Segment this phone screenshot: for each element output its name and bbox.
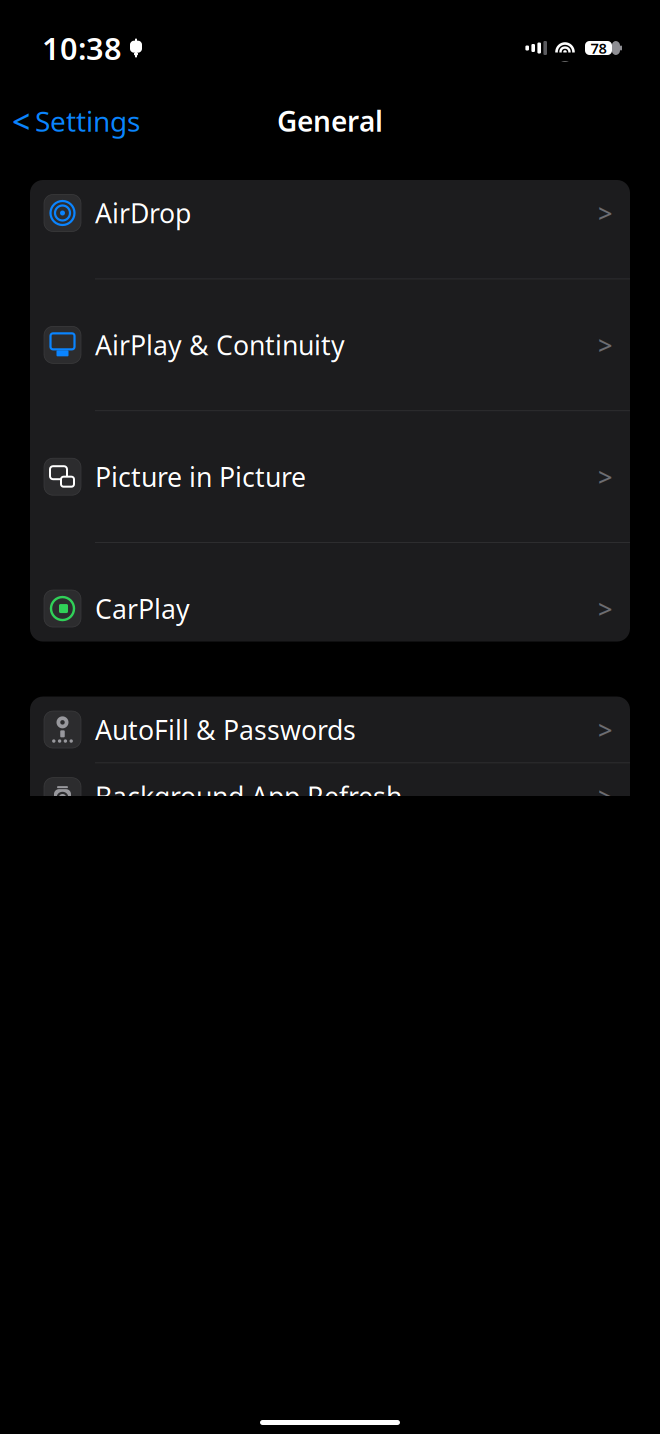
button[interactable]: Background App Refresh <box>30 763 630 830</box>
staticText: Background App Refresh <box>95 778 402 814</box>
staticText: Picture in Picture <box>95 459 306 494</box>
staticText: AirPlay & Continuity <box>95 327 345 362</box>
staticText: > <box>598 196 612 230</box>
staticText: AirDrop <box>95 195 191 231</box>
staticText: < <box>12 100 30 142</box>
button[interactable]: AutoFill & Passwords <box>30 696 630 763</box>
button[interactable]: AirDrop <box>30 180 630 312</box>
button[interactable]: < <box>0 94 140 148</box>
staticText: General <box>277 102 383 140</box>
staticText: > <box>598 779 612 813</box>
staticText: 10:38 <box>42 28 122 68</box>
staticText: Settings <box>35 102 140 140</box>
staticText: AutoFill & Passwords <box>95 712 356 747</box>
button[interactable]: Picture in Picture <box>30 444 630 575</box>
staticText: > <box>598 460 612 493</box>
staticText: > <box>598 328 612 362</box>
staticText: 78 <box>590 38 606 58</box>
staticText: > <box>598 713 612 746</box>
staticText: CarPlay <box>95 591 190 626</box>
button[interactable]: CarPlay <box>30 575 630 641</box>
staticText: > <box>598 592 612 625</box>
button[interactable]: AirPlay & Continuity <box>30 312 630 444</box>
